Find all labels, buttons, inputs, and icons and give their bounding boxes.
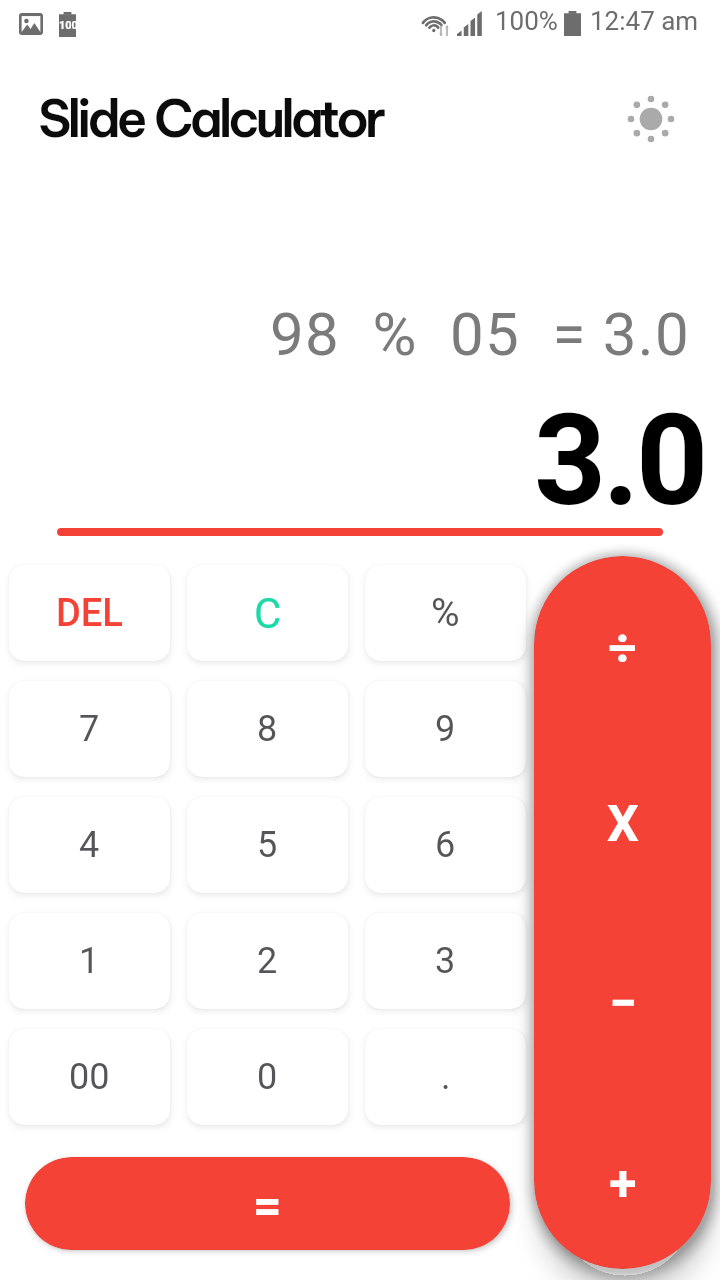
button[interactable]: − (534, 913, 711, 1091)
button[interactable]: 0 (187, 1029, 348, 1125)
staticText: 8 (257, 708, 278, 750)
button[interactable]: X (534, 735, 711, 913)
button[interactable]: 3 (365, 913, 526, 1009)
button[interactable]: % (365, 565, 526, 661)
staticText: 3.0 (534, 387, 705, 535)
staticText: DEL (56, 591, 123, 636)
staticText: 2 (257, 940, 278, 982)
button[interactable]: 2 (187, 913, 348, 1009)
staticText: 4 (79, 824, 100, 866)
staticText: 100 (59, 19, 76, 32)
button[interactable]: 7 (9, 681, 170, 777)
staticText: Calculator (154, 86, 382, 151)
button[interactable]: 00 (9, 1029, 170, 1125)
button[interactable]: Toggle theme (621, 89, 681, 149)
staticText: 00 (69, 1056, 110, 1098)
button[interactable]: . (365, 1029, 526, 1125)
staticText: 7 (79, 708, 100, 750)
staticText: X (607, 795, 639, 854)
staticText: 6 (435, 824, 456, 866)
staticText: C (254, 589, 282, 638)
button[interactable]: 1 (9, 913, 170, 1009)
button[interactable]: C (187, 565, 348, 661)
staticText: ÷ (608, 619, 637, 678)
staticText: 5 (257, 824, 278, 866)
button[interactable]: 5 (187, 797, 348, 893)
staticText: . (441, 1056, 451, 1098)
staticText: − (609, 974, 637, 1033)
staticText: = (253, 1177, 282, 1236)
button[interactable]: 4 (9, 797, 170, 893)
button[interactable]: DEL (9, 565, 170, 661)
button[interactable]: ÷ (534, 556, 711, 735)
staticText: 1 (79, 940, 100, 982)
button[interactable]: 6 (365, 797, 526, 893)
button[interactable]: = (25, 1157, 510, 1250)
button[interactable]: + (534, 1091, 711, 1269)
staticText: 3 (435, 940, 456, 982)
staticText: 0 (257, 1056, 278, 1098)
staticText: 98 % 05 = 3.0 (270, 299, 690, 369)
staticText: 9 (435, 708, 456, 750)
staticText: 12:47 am (590, 6, 699, 36)
staticText: % (431, 590, 460, 636)
staticText: + (609, 1155, 637, 1214)
staticText: Slide (38, 86, 144, 151)
button[interactable]: 8 (187, 681, 348, 777)
staticText: 100% (495, 6, 558, 36)
button[interactable]: 9 (365, 681, 526, 777)
